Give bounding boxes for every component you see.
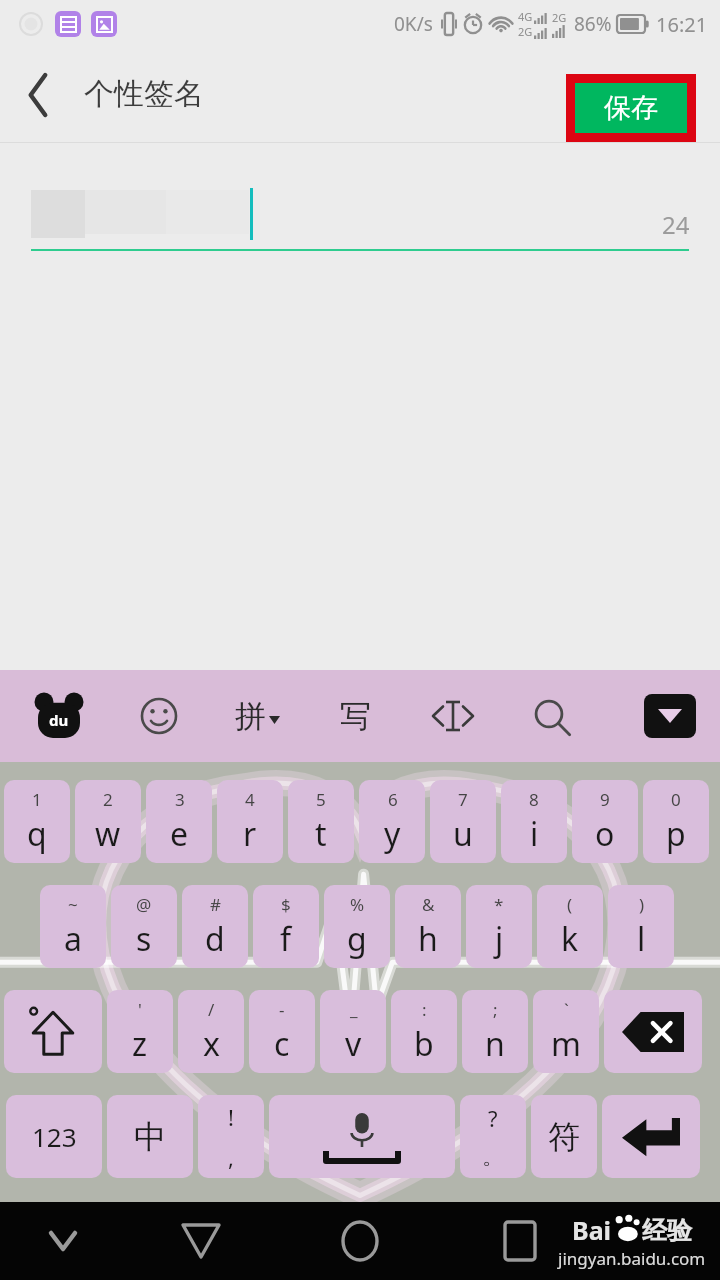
button[interactable]: @ (111, 885, 177, 968)
staticText: - (279, 998, 285, 1021)
button[interactable]: Search (502, 681, 600, 751)
button[interactable]: Backspace (604, 990, 702, 1073)
staticText: r (243, 812, 257, 856)
button[interactable]: $ (253, 885, 319, 968)
button[interactable]: 中 (107, 1095, 193, 1178)
staticText: ~ (68, 893, 78, 916)
button[interactable]: 3 (146, 780, 212, 863)
staticText: 4 (245, 788, 255, 811)
staticText: 1 (32, 788, 42, 811)
staticText: / (208, 998, 215, 1021)
staticText: & (422, 893, 435, 916)
button[interactable]: * (466, 885, 532, 968)
button[interactable]: 0 (643, 780, 709, 863)
button[interactable]: Recents (487, 1208, 553, 1274)
staticText: q (27, 812, 47, 856)
staticText: , (228, 1142, 234, 1172)
staticText: @ (136, 893, 152, 916)
staticText: y (384, 812, 401, 856)
staticText: j (495, 917, 504, 961)
staticText: 8 (529, 788, 539, 811)
staticText: 0K/s (394, 11, 433, 37)
button[interactable]: 4 (217, 780, 283, 863)
staticText: c (274, 1022, 290, 1066)
button[interactable]: 2 (75, 780, 141, 863)
staticText: ; (493, 998, 498, 1021)
staticText: 符 (548, 1117, 580, 1157)
staticText: ? (488, 1103, 498, 1133)
staticText: 3 (175, 788, 185, 811)
button[interactable]: ( (537, 885, 603, 968)
staticText: : (422, 998, 427, 1021)
button[interactable]: 写 (306, 681, 404, 751)
staticText: z (132, 1022, 148, 1066)
staticText: ! (228, 1102, 234, 1132)
button[interactable]: 1 (4, 780, 70, 863)
staticText: ' (138, 998, 142, 1021)
staticText: jingyan.baidu.com (558, 1247, 706, 1270)
staticText: 6 (388, 788, 398, 811)
button[interactable]: ) (608, 885, 674, 968)
staticText: 。 (482, 1143, 504, 1171)
button[interactable]: Shift (4, 990, 102, 1073)
staticText: p (666, 812, 686, 856)
button[interactable]: ~ (40, 885, 106, 968)
button[interactable]: Hide keyboard (30, 1208, 96, 1274)
button[interactable]: Space, voice input (269, 1095, 455, 1178)
staticText: f (280, 917, 292, 961)
button[interactable]: ! (198, 1095, 264, 1178)
button[interactable]: ` (533, 990, 599, 1073)
staticText: t (315, 812, 327, 856)
button[interactable]: Back (168, 1208, 234, 1274)
staticText: # (210, 893, 221, 916)
button[interactable]: Hide keyboard (644, 694, 696, 738)
button[interactable]: / (178, 990, 244, 1073)
button[interactable]: ? (460, 1095, 526, 1178)
staticText: 86% (574, 11, 612, 37)
button[interactable]: 123 (6, 1095, 102, 1178)
button[interactable]: & (395, 885, 461, 968)
staticText: a (64, 917, 82, 961)
staticText: 2G (552, 10, 567, 25)
button[interactable]: - (249, 990, 315, 1073)
button[interactable]: 7 (430, 780, 496, 863)
staticText: d (205, 917, 225, 961)
button[interactable]: Baidu input (30, 687, 88, 745)
button[interactable]: ; (462, 990, 528, 1073)
staticText: du (49, 710, 69, 730)
staticText: 写 (340, 697, 371, 736)
button[interactable]: : (391, 990, 457, 1073)
button[interactable]: 拼 (208, 681, 306, 751)
button[interactable]: 符 (531, 1095, 597, 1178)
staticText: m (551, 1022, 581, 1066)
button[interactable]: 9 (572, 780, 638, 863)
button[interactable]: Enter (602, 1095, 700, 1178)
staticText: ` (564, 998, 569, 1021)
button[interactable]: emoji (110, 681, 208, 751)
button[interactable]: % (324, 885, 390, 968)
button[interactable]: Back (8, 64, 70, 126)
button[interactable]: cursor (404, 681, 502, 751)
staticText: 2G (518, 24, 533, 39)
staticText: b (414, 1022, 434, 1066)
button[interactable]: Home (327, 1208, 393, 1274)
button[interactable]: # (182, 885, 248, 968)
staticText: % (350, 893, 365, 916)
button[interactable]: 6 (359, 780, 425, 863)
staticText: 个性签名 (84, 75, 204, 113)
button[interactable]: 保存 (575, 83, 687, 133)
staticText: o (595, 812, 615, 856)
staticText: 24 (662, 208, 690, 241)
staticText: l (637, 917, 646, 961)
staticText: n (485, 1022, 505, 1066)
staticText: 7 (458, 788, 468, 811)
button[interactable]: 5 (288, 780, 354, 863)
staticText: Bai (572, 1213, 612, 1247)
button[interactable]: ' (107, 990, 173, 1073)
staticText: w (95, 812, 121, 856)
staticText: x (203, 1022, 220, 1066)
staticText: v (345, 1022, 362, 1066)
button[interactable]: _ (320, 990, 386, 1073)
button[interactable]: 8 (501, 780, 567, 863)
staticText: 中 (134, 1117, 166, 1157)
